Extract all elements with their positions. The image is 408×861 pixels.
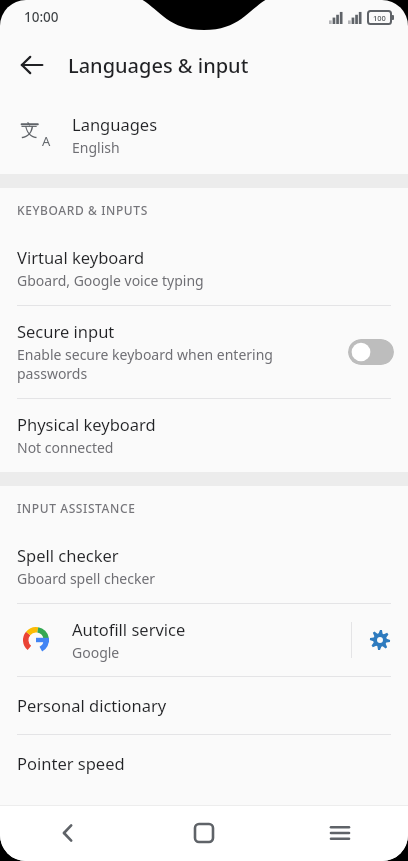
- staticText: Physical keyboard: [17, 413, 156, 435]
- staticText: 100: [373, 13, 386, 23]
- button[interactable]: Secure input toggle: [348, 339, 394, 365]
- staticText: 文: [21, 120, 38, 141]
- staticText: Virtual keyboard: [17, 246, 145, 268]
- button[interactable]: Autofill service: [0, 604, 351, 676]
- staticText: Languages & input: [68, 52, 249, 79]
- staticText: Not connected: [17, 438, 114, 457]
- staticText: KEYBOARD & INPUTS: [17, 202, 148, 218]
- staticText: 10:00: [24, 8, 59, 26]
- button[interactable]: Back: [0, 805, 136, 861]
- staticText: INPUT ASSISTANCE: [17, 500, 136, 516]
- button[interactable]: Personal dictionary: [0, 677, 408, 734]
- staticText: Pointer speed: [17, 752, 125, 774]
- button[interactable]: Home: [136, 805, 272, 861]
- staticText: Personal dictionary: [17, 694, 167, 716]
- staticText: A: [42, 132, 51, 150]
- staticText: English: [72, 138, 120, 157]
- staticText: Gboard spell checker: [17, 569, 156, 588]
- button[interactable]: Autofill settings: [352, 612, 408, 668]
- staticText: Google: [72, 643, 120, 662]
- button[interactable]: 文: [0, 96, 408, 174]
- staticText: Autofill service: [72, 618, 186, 640]
- button[interactable]: Recent apps: [272, 805, 408, 861]
- button[interactable]: Back: [8, 41, 56, 89]
- button[interactable]: Spell checker: [0, 530, 408, 603]
- button[interactable]: Virtual keyboard: [0, 232, 408, 305]
- staticText: Spell checker: [17, 544, 119, 566]
- staticText: Gboard, Google voice typing: [17, 271, 204, 290]
- staticText: Languages: [72, 113, 158, 135]
- staticText: Secure input: [17, 320, 115, 342]
- staticText: Enable secure keyboard when entering pas…: [17, 345, 334, 383]
- button[interactable]: Pointer speed: [0, 735, 408, 792]
- button[interactable]: Physical keyboard: [0, 399, 408, 472]
- button[interactable]: Secure input: [0, 306, 408, 398]
